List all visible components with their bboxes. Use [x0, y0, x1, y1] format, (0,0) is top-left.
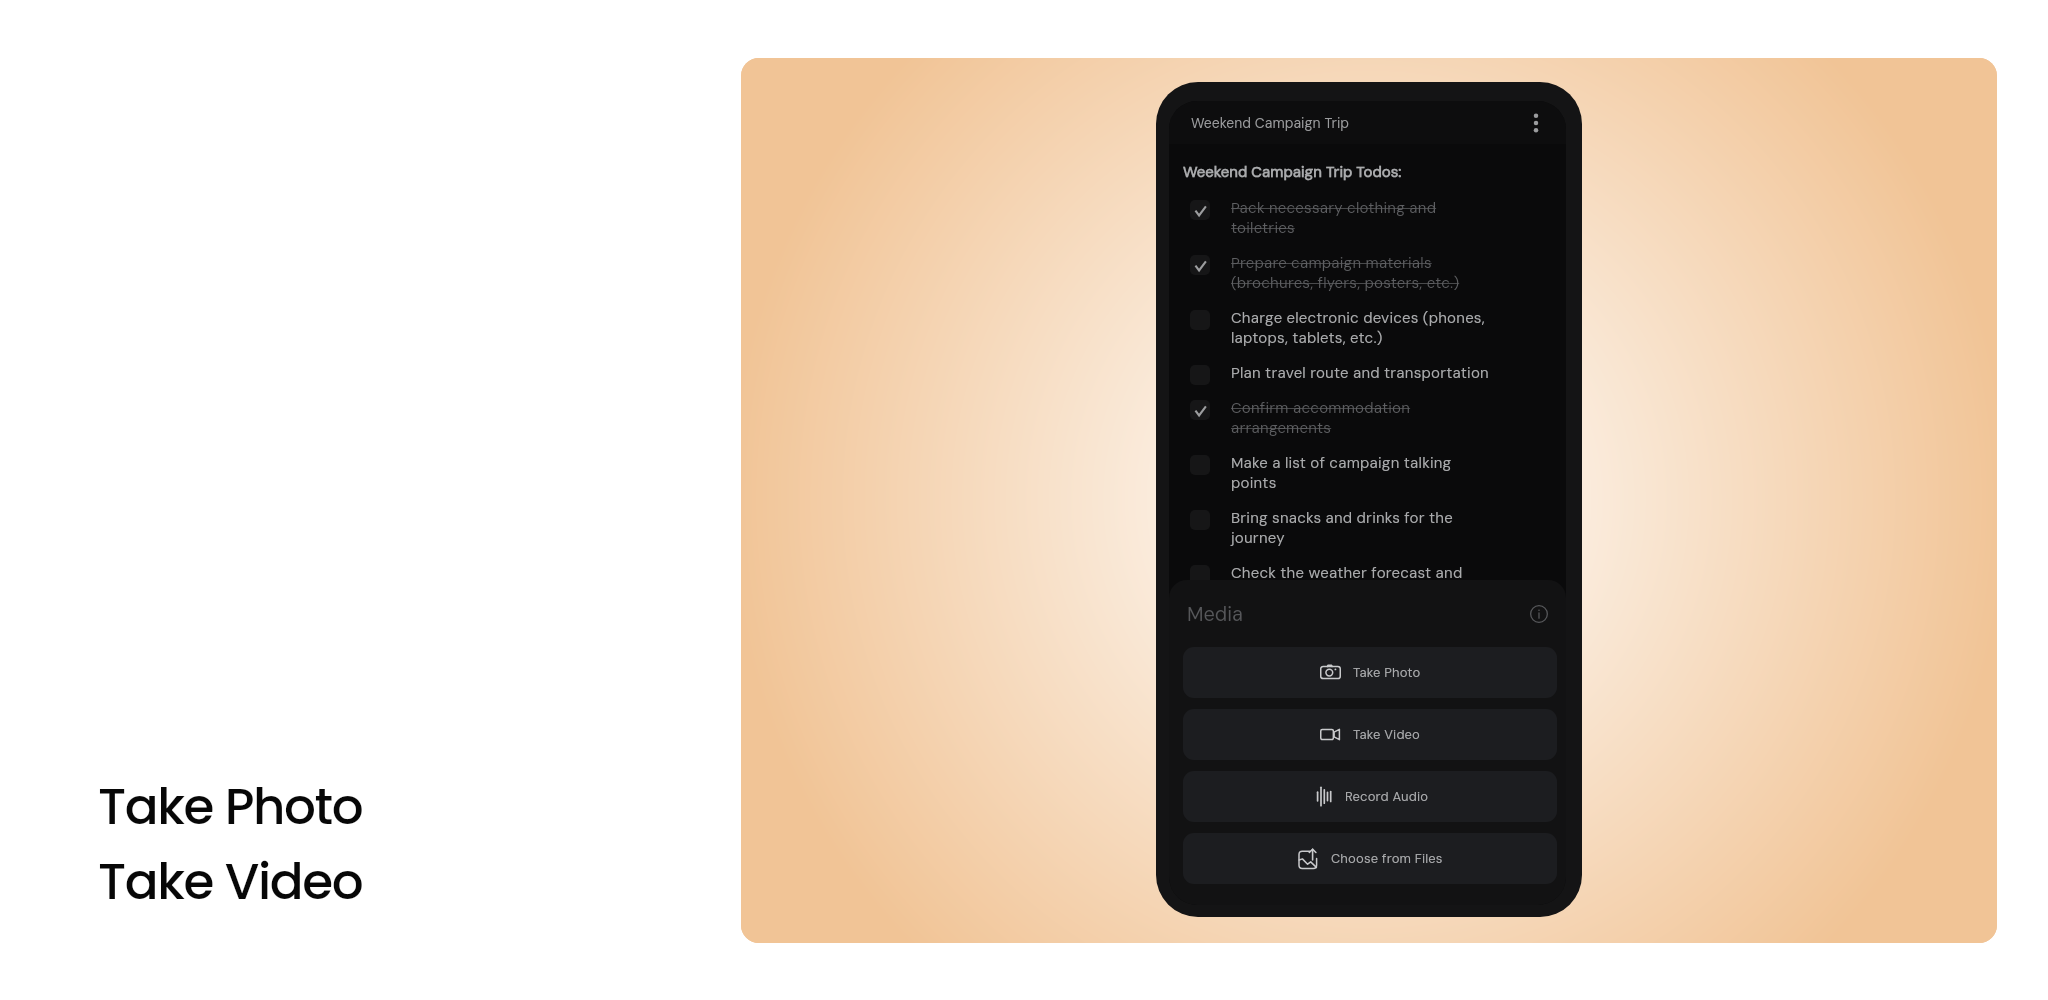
- staticText: Make a list of campaign talking points: [1231, 453, 1491, 493]
- staticText: Prepare campaign materials (brochures, f…: [1231, 253, 1491, 293]
- staticText: Record Audio: [1345, 788, 1429, 805]
- button[interactable]: Check the weather forecast and pack acco…: [1183, 563, 1566, 618]
- button[interactable]: Pack necessary clothing and toiletries: [1183, 198, 1566, 253]
- staticText: Weekend Campaign Trip: [1191, 114, 1350, 132]
- button[interactable]: Information: [1527, 602, 1551, 626]
- button[interactable]: Prepare campaign materials (brochures, f…: [1183, 253, 1566, 308]
- button[interactable]: Plan travel route and transportation: [1183, 363, 1566, 398]
- button[interactable]: Record Audio: [1183, 771, 1557, 822]
- staticText: Charge electronic devices (phones, lapto…: [1231, 308, 1491, 348]
- staticText: Check the weather forecast and pack acco…: [1231, 563, 1491, 603]
- staticText: Take Photo: [1353, 664, 1421, 681]
- button[interactable]: More options: [1523, 110, 1549, 136]
- button[interactable]: Make a list of campaign talking points: [1183, 453, 1566, 508]
- button[interactable]: Bring snacks and drinks for the journey: [1183, 508, 1566, 563]
- staticText: Media: [1187, 601, 1244, 627]
- staticText: Weekend Campaign Trip Todos:: [1183, 162, 1402, 182]
- staticText: Take Photo Take Video: [98, 772, 363, 916]
- staticText: Plan travel route and transportation: [1231, 363, 1491, 383]
- button[interactable]: Confirm accommodation arrangements: [1183, 398, 1566, 453]
- staticText: Confirm accommodation arrangements: [1231, 398, 1491, 438]
- staticText: Choose from Files: [1331, 850, 1443, 867]
- button[interactable]: Choose from Files: [1183, 833, 1557, 884]
- button[interactable]: Take Video: [1183, 709, 1557, 760]
- staticText: Bring snacks and drinks for the journey: [1231, 508, 1491, 548]
- staticText: Pack necessary clothing and toiletries: [1231, 198, 1491, 238]
- button[interactable]: Take Photo: [1183, 647, 1557, 698]
- button[interactable]: Charge electronic devices (phones, lapto…: [1183, 308, 1566, 363]
- staticText: Take Video: [1353, 726, 1421, 743]
